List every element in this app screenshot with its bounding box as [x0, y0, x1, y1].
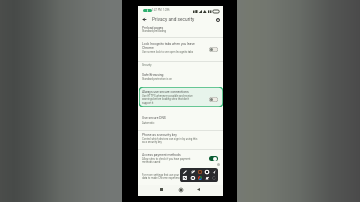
button[interactable]: Back — [138, 13, 150, 25]
button[interactable]: Lock Incognito tabs when you leave Chrom… — [138, 39, 223, 55]
button[interactable]: Crop — [181, 175, 189, 181]
button[interactable]: Safe Browsing — [138, 72, 223, 84]
staticText: Privacy and security — [152, 17, 195, 23]
staticText: Always use secure connections — [142, 90, 189, 94]
staticText: Security — [142, 63, 152, 66]
button[interactable]: Phone as a security key — [138, 131, 223, 147]
button[interactable]: Palette — [196, 175, 203, 181]
button[interactable]: Switch on — [209, 156, 218, 161]
button[interactable]: Switch off — [209, 47, 218, 52]
staticText: Preload pages — [142, 26, 164, 30]
staticText: Control which devices can sign in by usi… — [142, 137, 198, 144]
staticText: Automatic — [142, 121, 155, 124]
button[interactable]: Screen recording — [143, 9, 152, 12]
staticText: Use secure DNS — [142, 116, 166, 120]
button[interactable]: Preload pages — [138, 25, 223, 38]
button[interactable]: Help — [212, 14, 224, 26]
button[interactable]: Back — [193, 185, 204, 194]
button[interactable]: Image — [189, 175, 196, 181]
staticText: Phone as a security key — [142, 133, 177, 137]
staticText: 1:47 PM 1:28% — [152, 9, 170, 12]
staticText: Safe Browsing — [142, 73, 164, 77]
button[interactable]: Access payment methods — [138, 151, 223, 167]
staticText: Lock Incognito tabs when you leave Chrom… — [142, 42, 195, 50]
button[interactable]: Recents — [156, 185, 167, 194]
staticText: Standard preloading — [142, 29, 167, 32]
button[interactable]: Blur — [203, 169, 210, 175]
button[interactable]: Undo — [210, 175, 217, 181]
staticText: For more settings that use your browsing… — [142, 173, 191, 180]
button[interactable]: Switch off — [209, 97, 218, 102]
button[interactable]: Arrow — [210, 169, 217, 175]
staticText: Access payment methods — [142, 153, 181, 157]
button[interactable]: Pen — [181, 169, 189, 175]
button[interactable]: Move toolbar — [217, 163, 220, 166]
button[interactable]: Highlighter — [189, 169, 196, 175]
staticText: Allow sites to check if you have payment… — [142, 157, 191, 164]
button[interactable]: Home — [175, 185, 186, 194]
staticText: Use screen lock to see open Incognito ta… — [142, 50, 194, 53]
button[interactable]: Always use secure connections — [139, 87, 223, 107]
button[interactable]: Colour — [196, 169, 203, 175]
button[interactable]: Stamp — [203, 175, 210, 181]
staticText: Use HTTPS whenever possible and receive … — [142, 94, 193, 105]
staticText: Standard protection is on — [142, 77, 173, 80]
button[interactable]: Use secure DNS — [138, 114, 223, 126]
